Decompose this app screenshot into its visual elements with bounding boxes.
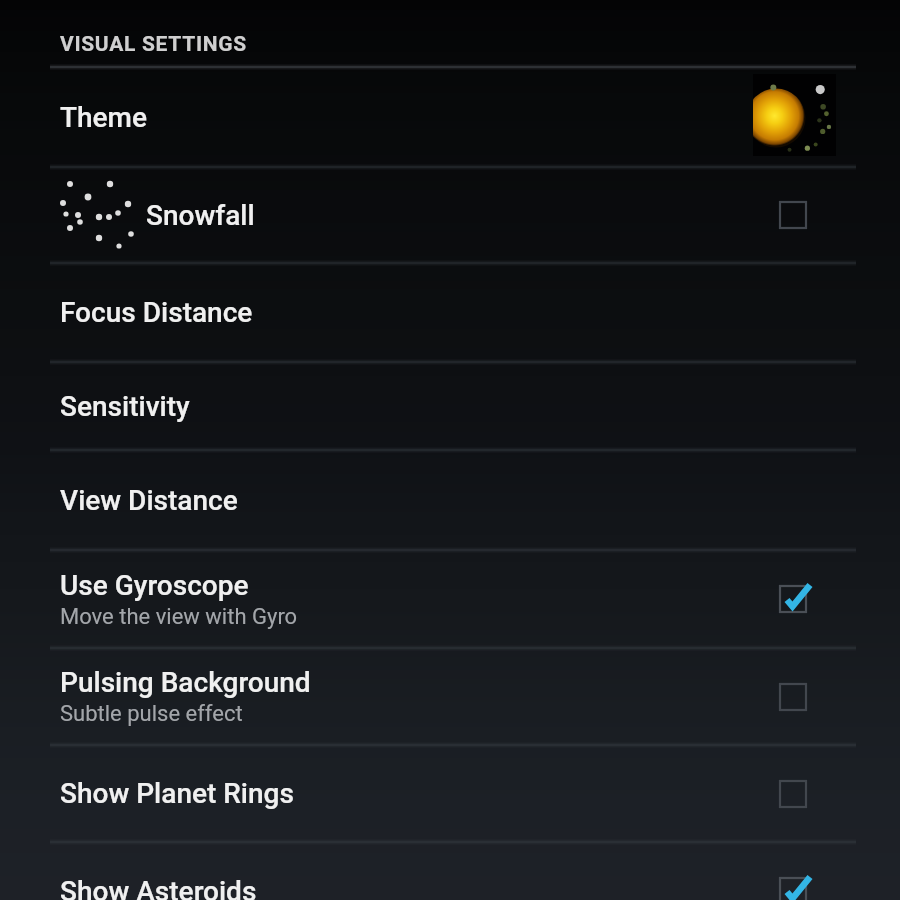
button[interactable]: Focus Distance: [0, 263, 900, 362]
staticText: VISUAL SETTINGS: [60, 32, 247, 57]
button[interactable]: Show Planet Rings: [0, 745, 900, 842]
staticText: Move the view with Gyro: [60, 604, 298, 630]
staticText: Subtle pulse effect: [60, 701, 243, 727]
staticText: Focus Distance: [60, 296, 253, 329]
button[interactable]: Pulsing Background: [770, 674, 816, 720]
staticText: Snowfall: [146, 199, 255, 232]
button[interactable]: View Distance: [0, 450, 900, 550]
button[interactable]: Sensitivity: [0, 362, 900, 450]
staticText: View Distance: [60, 484, 238, 517]
button[interactable]: Snowfall: [0, 167, 900, 263]
staticText: Show Planet Rings: [60, 777, 294, 810]
staticText: Show Asteroids: [60, 875, 257, 900]
staticText: Theme: [60, 101, 147, 134]
staticText: Sensitivity: [60, 390, 190, 423]
button[interactable]: Show Asteroids: [0, 842, 900, 900]
staticText: Pulsing Background: [60, 666, 311, 699]
staticText: Use Gyroscope: [60, 569, 249, 602]
button[interactable]: Theme: [0, 67, 900, 167]
button[interactable]: Use Gyroscope: [0, 550, 900, 648]
button[interactable]: Use Gyroscope: [770, 576, 816, 622]
button[interactable]: Show Planet Rings: [770, 771, 816, 817]
button[interactable]: Snowfall: [770, 192, 816, 238]
button[interactable]: Pulsing Background: [0, 648, 900, 745]
button[interactable]: Show Asteroids: [770, 868, 816, 900]
